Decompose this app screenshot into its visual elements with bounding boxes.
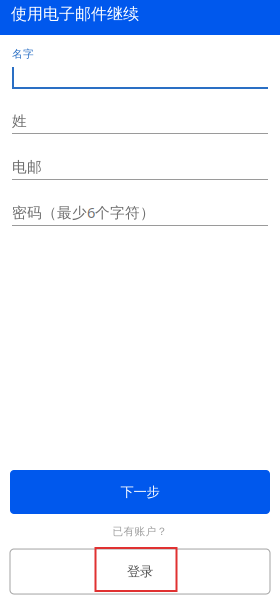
staticText: 已有账户？ <box>112 525 167 538</box>
button[interactable]: 姓 <box>12 89 268 134</box>
button[interactable]: 下一步 <box>10 470 270 514</box>
staticText: 下一步 <box>120 484 159 500</box>
staticText: 姓 <box>12 112 27 130</box>
staticText: 使用电子邮件继续 <box>11 4 139 24</box>
button[interactable]: 电邮 <box>12 134 268 180</box>
staticText: 登录 <box>127 563 153 580</box>
staticText: 电邮 <box>12 158 42 176</box>
button[interactable]: 登录 <box>10 549 270 594</box>
button[interactable]: 名字 <box>12 35 268 89</box>
staticText: 密码（最少6个字符） <box>12 202 155 222</box>
button[interactable]: 密码（最少6个字符） <box>12 180 268 226</box>
staticText: 名字 <box>12 47 34 60</box>
